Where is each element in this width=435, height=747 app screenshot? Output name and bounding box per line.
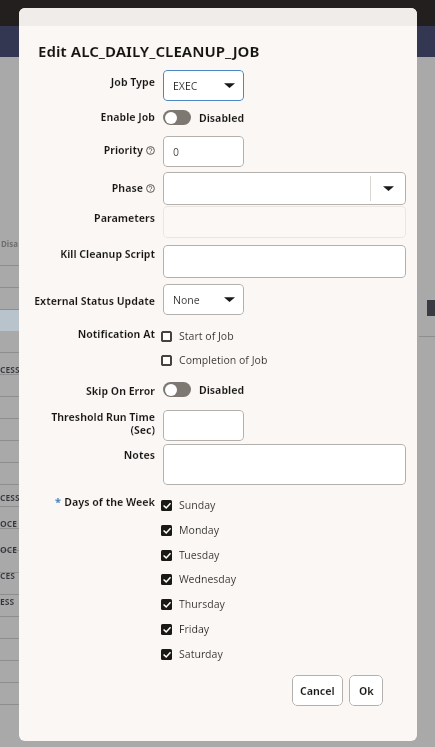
button[interactable]: Thursday <box>161 594 225 614</box>
button[interactable]: None <box>163 284 244 315</box>
staticText: Cancel <box>300 684 335 698</box>
staticText: CESS <box>0 492 20 504</box>
staticText: Days of the Week <box>64 495 155 509</box>
staticText: Job Type <box>110 75 155 89</box>
staticText: Disabled <box>199 383 245 397</box>
staticText: Phase <box>111 181 143 195</box>
staticText: 0 <box>173 145 180 159</box>
staticText: Threshold Run Time (Sec) <box>51 410 155 437</box>
button[interactable]: Monday <box>161 520 220 540</box>
button[interactable]: Disabled <box>163 382 245 397</box>
staticText: External Status Update <box>34 294 155 308</box>
staticText: Parameters <box>94 211 155 225</box>
button[interactable]: 0 <box>163 136 244 167</box>
staticText: * <box>55 494 61 509</box>
staticText: Notes <box>123 448 155 462</box>
button[interactable]: Sunday <box>161 495 216 515</box>
staticText: Notification At <box>77 327 155 341</box>
staticText: Enable Job <box>100 110 155 124</box>
staticText: Tuesday <box>179 548 220 562</box>
staticText: Thursday <box>179 597 225 611</box>
button[interactable] <box>163 172 406 205</box>
staticText: Ok <box>359 684 374 698</box>
button[interactable] <box>163 245 406 278</box>
staticText: CES <box>0 570 15 582</box>
staticText: Friday <box>179 622 210 636</box>
button[interactable]: Tuesday <box>161 545 220 565</box>
button[interactable]: EXEC <box>163 70 244 101</box>
staticText: Disabled <box>199 111 245 125</box>
button[interactable] <box>163 410 244 441</box>
staticText: None <box>173 293 200 307</box>
staticText: CESS <box>0 364 20 376</box>
button[interactable] <box>163 206 406 238</box>
button[interactable]: Wednesday <box>161 569 237 589</box>
button[interactable]: Disabled <box>163 110 245 125</box>
staticText: ESS <box>0 596 15 608</box>
staticText: EXEC <box>173 79 198 93</box>
staticText: Start of Job <box>179 329 234 343</box>
button[interactable] <box>163 444 406 485</box>
staticText: Kill Cleanup Script <box>60 247 155 261</box>
button[interactable]: Cancel <box>292 675 343 706</box>
staticText: Edit ALC_DAILY_CLEANUP_JOB <box>38 41 260 61</box>
button[interactable]: Friday <box>161 619 210 639</box>
button[interactable]: Completion of Job <box>161 350 268 370</box>
staticText: OCE <box>0 518 17 530</box>
button[interactable]: Ok <box>349 675 383 706</box>
staticText: Completion of Job <box>179 353 268 367</box>
staticText: Sunday <box>179 498 216 512</box>
staticText: Skip On Error <box>86 384 155 398</box>
button[interactable]: Start of Job <box>161 326 234 346</box>
staticText: Monday <box>179 523 220 537</box>
staticText: Wednesday <box>179 572 237 586</box>
staticText: Saturday <box>179 647 223 661</box>
staticText: OCE <box>0 544 17 556</box>
staticText: Disa <box>1 238 19 249</box>
staticText: Priority <box>103 143 143 157</box>
button[interactable]: Saturday <box>161 644 223 664</box>
